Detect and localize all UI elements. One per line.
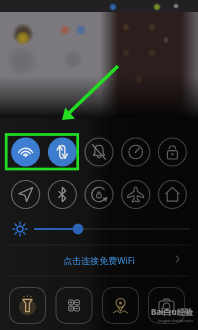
button[interactable]: Camera <box>151 289 184 322</box>
button[interactable]: Calculator <box>59 289 92 322</box>
staticText: 点击连接免费WiFi <box>63 254 135 266</box>
button[interactable]: Location <box>8 179 37 208</box>
button[interactable]: Wi-Fi <box>8 136 37 165</box>
staticText: jingyan.baidu.com <box>158 318 193 323</box>
button[interactable]: Mute <box>84 136 113 165</box>
button[interactable]: Bluetooth <box>46 179 75 208</box>
button[interactable]: Brightness <box>0 218 198 240</box>
button[interactable]: Flashlight <box>13 289 46 322</box>
button[interactable]: Home <box>160 179 189 208</box>
button[interactable]: Airplane mode <box>122 179 151 208</box>
button[interactable]: 点击连接免费WiFi <box>0 245 198 275</box>
button[interactable]: Auto rotate <box>84 179 113 208</box>
staticText: Bai白u经验 <box>151 306 193 317</box>
button[interactable]: Maps <box>105 289 138 322</box>
button[interactable]: Screen lock <box>160 136 189 165</box>
button[interactable]: Mobile data <box>46 136 75 165</box>
button[interactable]: Timer <box>122 136 151 165</box>
